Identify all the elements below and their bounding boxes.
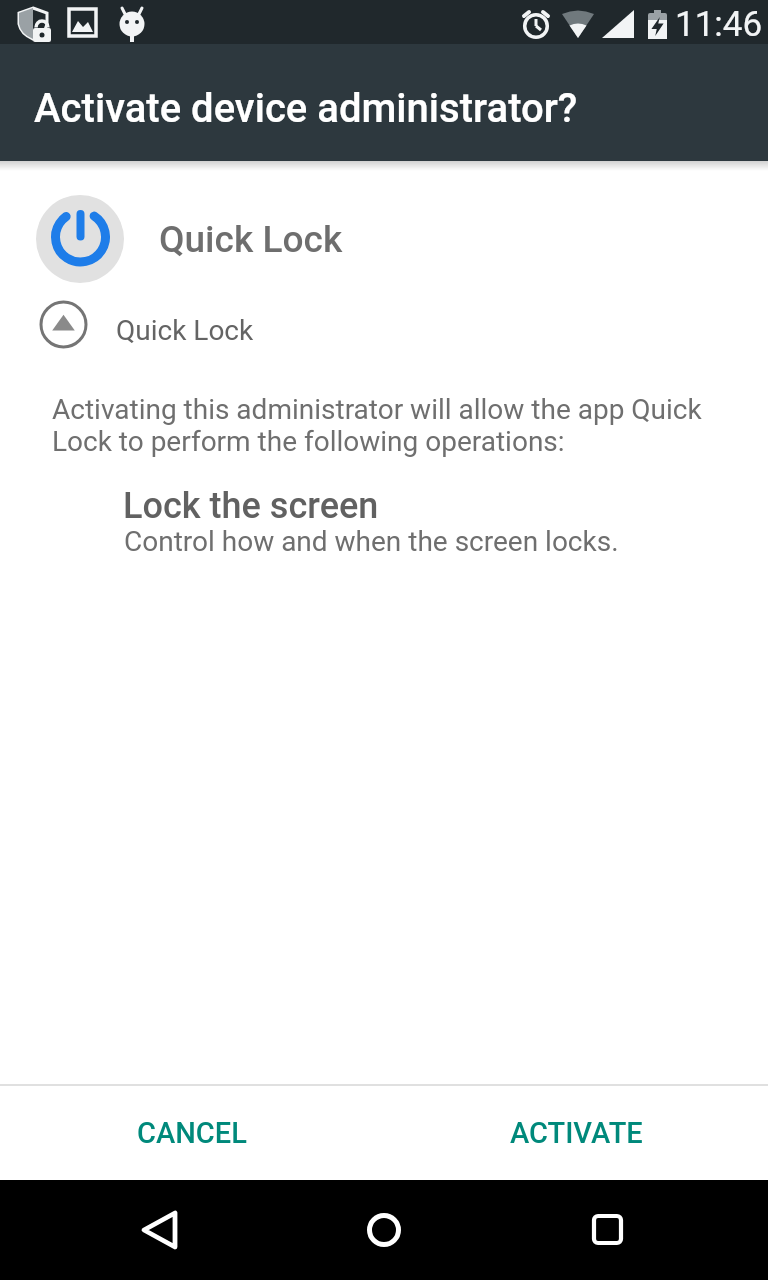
button[interactable] (558, 1180, 658, 1280)
staticText: 11:46 (675, 4, 763, 45)
button[interactable]: Quick Lock (39, 300, 768, 349)
button[interactable] (110, 1180, 210, 1280)
staticText: CANCEL (137, 1116, 247, 1150)
staticText: Activate device administrator? (34, 85, 578, 132)
staticText: Quick Lock (159, 218, 343, 261)
staticText: Lock the screen (123, 485, 379, 527)
button[interactable]: CANCEL (0, 1086, 384, 1180)
button[interactable]: ACTIVATE (384, 1086, 768, 1180)
staticText: ACTIVATE (510, 1116, 643, 1150)
staticText: Quick Lock (116, 314, 254, 347)
staticText: Control how and when the screen locks. (124, 525, 619, 558)
staticText: Activating this administrator will allow… (52, 393, 702, 458)
button[interactable] (334, 1180, 434, 1280)
